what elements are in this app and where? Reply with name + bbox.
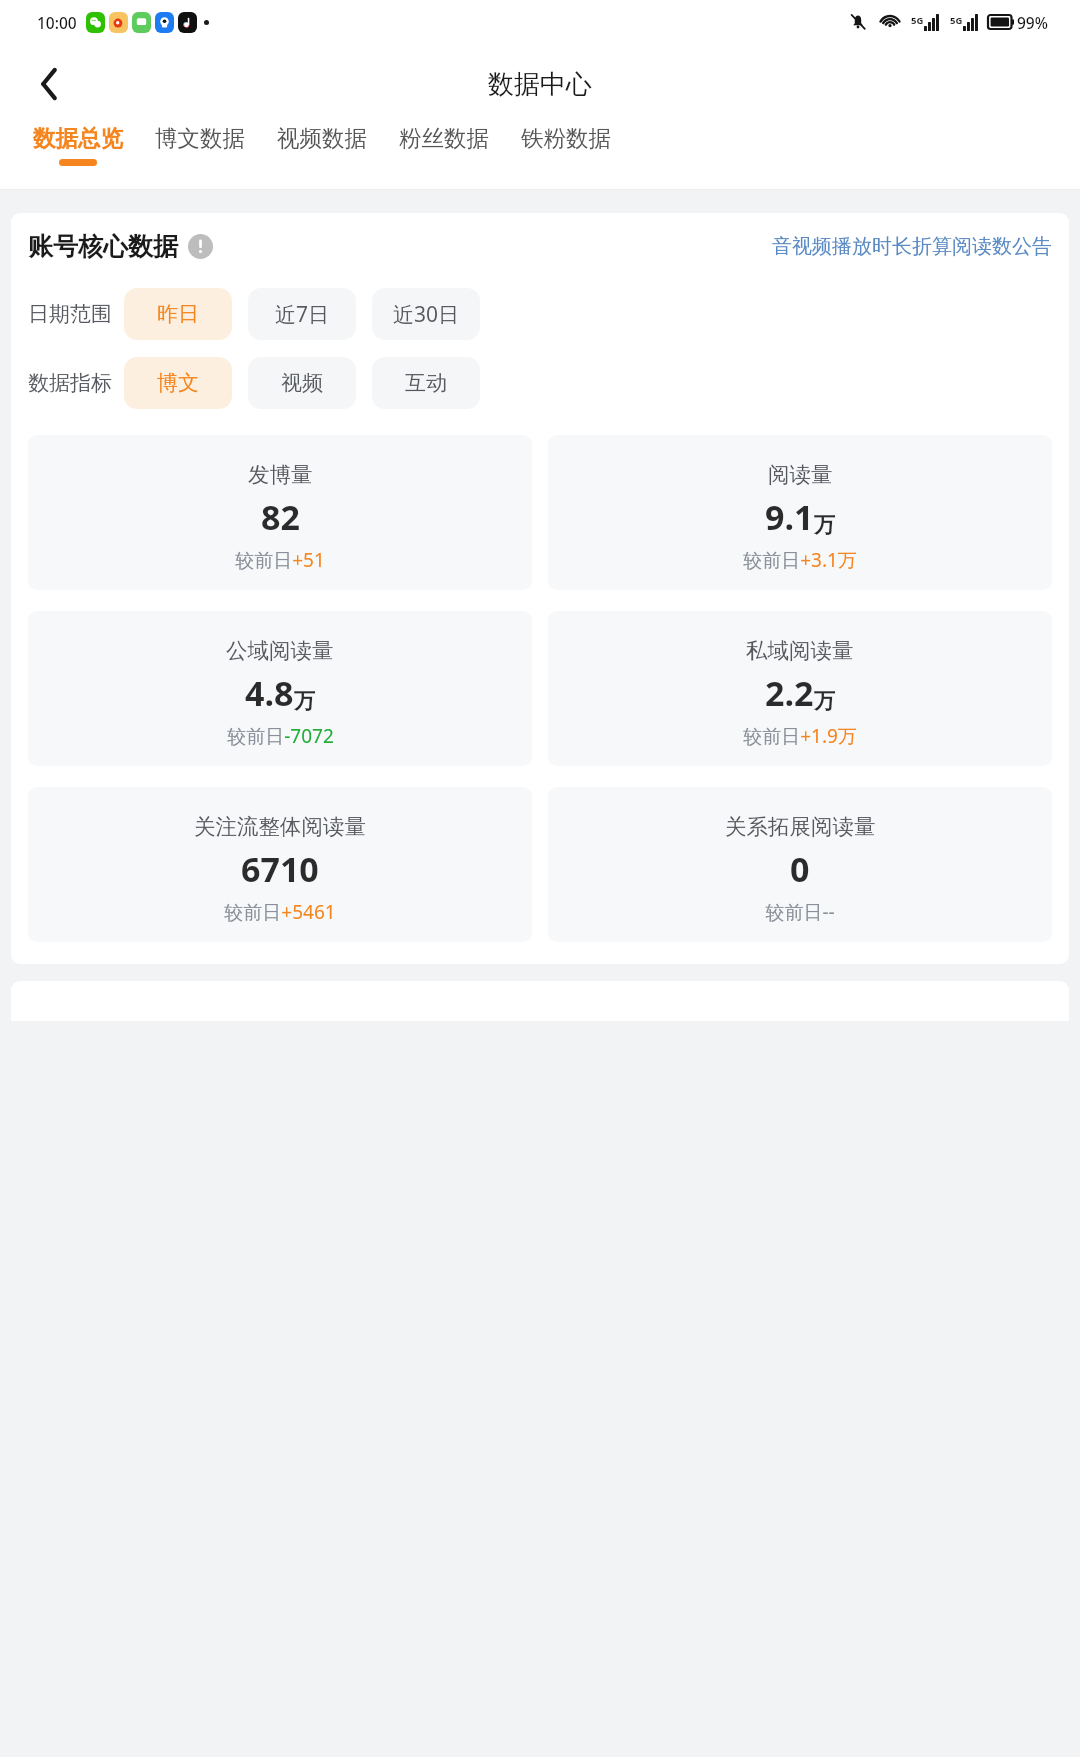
- staticText: 4.8: [245, 670, 294, 716]
- staticText: 账号核心数据: [28, 231, 178, 262]
- staticText: 较前日+1.9万: [743, 723, 857, 749]
- button[interactable]: 说明: [187, 233, 214, 260]
- staticText: 82: [261, 494, 300, 540]
- staticText: 99%: [1017, 12, 1048, 33]
- staticText: 较前日+5461: [224, 899, 336, 925]
- staticText: 较前日+3.1万: [743, 547, 857, 573]
- staticText: 数据指标: [28, 370, 112, 396]
- button[interactable]: 公域阅读量: [28, 611, 532, 766]
- button[interactable]: 音视频播放时长折算阅读数公告: [772, 234, 1052, 259]
- staticText: 万: [814, 688, 835, 714]
- staticText: 近30日: [393, 300, 460, 329]
- staticText: 粉丝数据: [399, 124, 489, 152]
- button[interactable]: 关系拓展阅读量: [548, 787, 1052, 942]
- staticText: 数据中心: [488, 68, 592, 101]
- staticText: 昨日: [157, 301, 199, 327]
- staticText: 2.2: [765, 670, 814, 716]
- staticText: 关注流整体阅读量: [194, 813, 366, 840]
- staticText: 6710: [241, 846, 319, 892]
- staticText: 视频: [281, 370, 323, 396]
- button[interactable]: 近7日: [248, 288, 356, 340]
- staticText: 阅读量: [768, 461, 833, 488]
- staticText: 近7日: [275, 300, 330, 329]
- button[interactable]: 私域阅读量: [548, 611, 1052, 766]
- button[interactable]: 关注流整体阅读量: [28, 787, 532, 942]
- staticText: 较前日+51: [235, 547, 325, 573]
- staticText: 铁粉数据: [521, 124, 611, 152]
- staticText: 0: [790, 846, 810, 892]
- staticText: 互动: [405, 370, 447, 396]
- staticText: 5G: [911, 14, 924, 27]
- staticText: 万: [814, 512, 835, 538]
- button[interactable]: 铁粉数据: [505, 124, 627, 159]
- staticText: 发博量: [248, 461, 313, 488]
- button[interactable]: 昨日: [124, 288, 232, 340]
- button[interactable]: 近30日: [372, 288, 480, 340]
- staticText: 博文数据: [155, 124, 245, 152]
- staticText: 9.1: [765, 494, 814, 540]
- button[interactable]: 发博量: [28, 435, 532, 590]
- staticText: 万: [294, 688, 315, 714]
- staticText: 公域阅读量: [226, 637, 334, 664]
- button[interactable]: 互动: [372, 357, 480, 409]
- button[interactable]: Back: [20, 55, 78, 113]
- staticText: 私域阅读量: [746, 637, 854, 664]
- staticText: 10:00: [37, 12, 77, 33]
- button[interactable]: 粉丝数据: [383, 124, 505, 159]
- button[interactable]: 博文: [124, 357, 232, 409]
- staticText: 5G: [950, 14, 963, 27]
- staticText: 较前日-7072: [227, 723, 334, 749]
- button[interactable]: 博文数据: [139, 124, 261, 159]
- button[interactable]: 阅读量: [548, 435, 1052, 590]
- staticText: 日期范围: [28, 301, 112, 327]
- button[interactable]: 视频数据: [261, 124, 383, 159]
- staticText: 视频数据: [277, 124, 367, 152]
- staticText: 博文: [157, 370, 199, 396]
- button[interactable]: 数据总览: [17, 124, 139, 166]
- staticText: 数据总览: [33, 124, 123, 152]
- staticText: 较前日--: [765, 899, 835, 925]
- button[interactable]: 视频: [248, 357, 356, 409]
- staticText: 关系拓展阅读量: [725, 813, 876, 840]
